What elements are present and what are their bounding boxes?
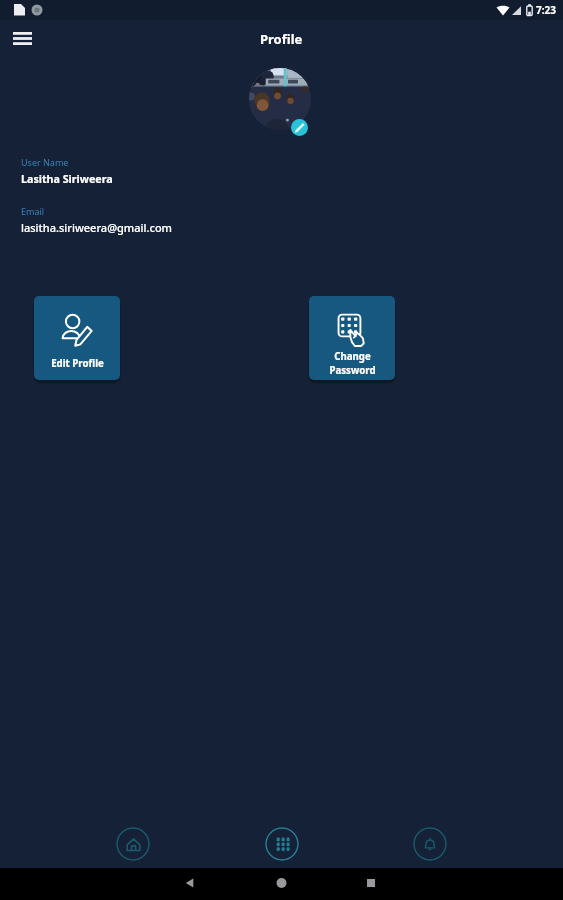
staticText: 7:23 [536, 3, 556, 17]
button[interactable]: Menu [8, 24, 36, 52]
button[interactable]: Edit Profile [34, 296, 120, 380]
button[interactable]: Change Password [309, 296, 395, 380]
button[interactable]: Notifications [413, 827, 447, 861]
button[interactable]: Dashboard [265, 827, 299, 861]
button[interactable]: Home [116, 827, 150, 861]
button[interactable]: Edit photo [291, 119, 308, 136]
staticText: Profile [260, 30, 303, 48]
staticText: lasitha.siriweera@gmail.com [21, 220, 173, 235]
staticText: Email [21, 205, 45, 217]
staticText: Change Password [329, 350, 376, 377]
staticText: Edit Profile [51, 357, 104, 370]
staticText: Lasitha Siriweera [21, 172, 113, 187]
button[interactable]: Profile photo [249, 68, 311, 130]
staticText: User Name [21, 156, 69, 168]
